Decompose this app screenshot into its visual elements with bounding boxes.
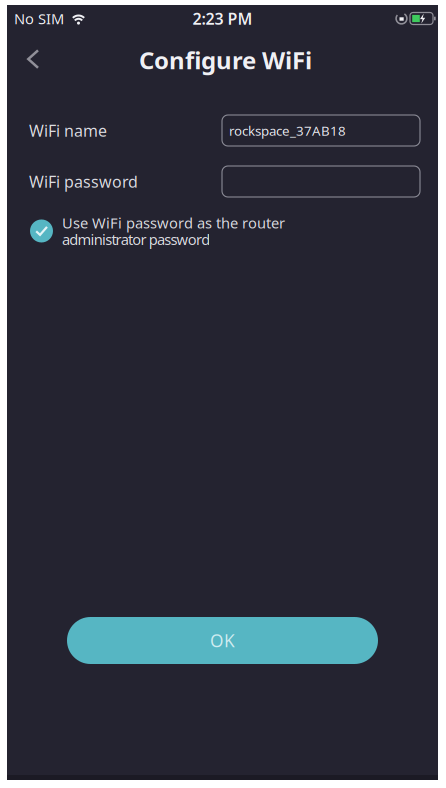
button[interactable]: Back [7, 44, 39, 69]
button[interactable]: Use WiFi password as the router [7, 197, 438, 249]
staticText: OK [210, 629, 235, 652]
staticText: WiFi password [29, 171, 138, 192]
staticText: Use WiFi password as the router [62, 213, 285, 232]
staticText: Configure WiFi [139, 44, 312, 76]
staticText: 2:23 PM [192, 8, 252, 29]
button[interactable]: OK [67, 617, 378, 664]
button[interactable]: WiFi name [222, 115, 420, 146]
staticText: WiFi name [29, 120, 107, 141]
button[interactable]: WiFi password [222, 166, 420, 197]
staticText: No SIM [14, 9, 64, 28]
staticText: rockspace_37AB18 [229, 122, 346, 139]
staticText: administrator password [62, 229, 210, 249]
